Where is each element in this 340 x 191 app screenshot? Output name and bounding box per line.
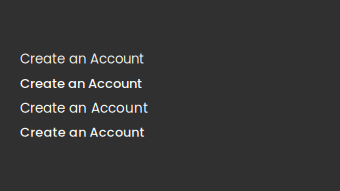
staticText: Create an Account <box>20 74 142 93</box>
staticText: Create an Account <box>20 98 148 117</box>
staticText: Create an Account <box>20 50 144 68</box>
staticText: Create an Account <box>20 123 144 141</box>
